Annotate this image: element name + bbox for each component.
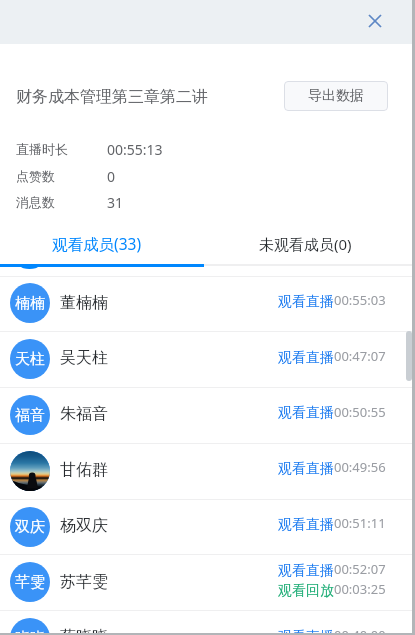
staticText: 00:52:07 — [334, 560, 386, 578]
staticText: 观看成员(33) — [52, 233, 142, 254]
staticText: 观看回放 — [278, 582, 334, 600]
button[interactable] — [0, 387, 415, 443]
staticText: 杨双庆 — [60, 516, 108, 536]
staticText: 福音 — [15, 406, 45, 425]
staticText: 观看直播 — [278, 404, 334, 422]
staticText: 00:51:11 — [334, 514, 386, 532]
staticText: 朱福音 — [60, 404, 108, 424]
button[interactable] — [204, 228, 409, 266]
staticText: 00:47:07 — [334, 347, 386, 365]
button[interactable]: 导出数据 — [284, 81, 388, 111]
staticText: 点赞数 — [16, 168, 55, 184]
staticText: 天柱 — [15, 350, 45, 369]
button[interactable] — [0, 443, 415, 499]
staticText: 00:40:00 — [334, 626, 386, 635]
staticText: 0 — [107, 167, 116, 186]
button[interactable]: Close — [363, 9, 387, 33]
staticText: 00:55:03 — [334, 291, 386, 309]
staticText: 观看直播 — [278, 562, 334, 580]
staticText: 观看直播 — [278, 628, 334, 635]
staticText: 甘佑群 — [60, 460, 108, 480]
staticText: 00:03:25 — [334, 580, 386, 598]
staticText: 蔡晓晓 — [60, 627, 108, 635]
staticText: 导出数据 — [308, 87, 364, 105]
staticText: 董楠楠 — [60, 293, 108, 313]
staticText: 财务成本管理第三章第二讲 — [16, 87, 208, 107]
staticText: 苏芊雯 — [60, 572, 108, 592]
staticText: 00:49:56 — [334, 458, 386, 476]
staticText: 未观看成员(0) — [259, 234, 352, 254]
staticText: 直播时长 — [16, 141, 68, 157]
staticText: 芊雯 — [15, 573, 45, 592]
button[interactable] — [0, 499, 415, 555]
button[interactable] — [0, 228, 204, 266]
button[interactable] — [0, 554, 415, 610]
staticText: 晓晓 — [15, 629, 45, 635]
staticText: 00:50:55 — [334, 403, 386, 421]
staticText: 观看直播 — [278, 349, 334, 367]
staticText: 吴天柱 — [60, 348, 108, 368]
button[interactable] — [0, 276, 415, 332]
staticText: 观看直播 — [278, 293, 334, 311]
staticText: 消息数 — [16, 194, 55, 210]
staticText: 双庆 — [15, 518, 45, 537]
staticText: 31 — [107, 193, 124, 212]
button[interactable] — [0, 610, 415, 635]
button[interactable] — [0, 331, 415, 387]
staticText: 楠楠 — [15, 294, 45, 313]
staticText: 观看直播 — [278, 460, 334, 478]
staticText: 观看直播 — [278, 516, 334, 534]
staticText: 00:55:13 — [107, 140, 163, 159]
